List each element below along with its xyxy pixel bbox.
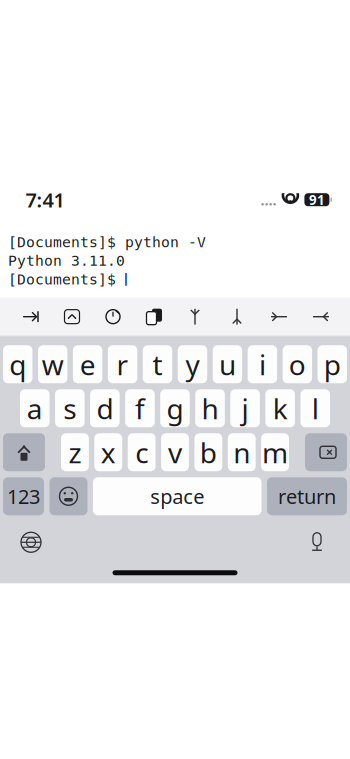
button[interactable]: b — [194, 433, 222, 471]
staticText: q — [9, 346, 26, 383]
staticText: a — [27, 390, 43, 427]
staticText: n — [233, 434, 250, 471]
button[interactable]: Down — [224, 304, 250, 330]
button[interactable]: Next keyboard — [14, 525, 48, 559]
button[interactable]: f — [125, 389, 155, 427]
staticText: p — [324, 346, 341, 383]
staticText: l — [312, 390, 319, 427]
button[interactable]: k — [265, 389, 295, 427]
button[interactable]: i — [248, 345, 277, 383]
button[interactable]: s — [55, 389, 85, 427]
staticText: 7:41 — [25, 186, 64, 213]
button[interactable]: g — [160, 389, 190, 427]
staticText: k — [273, 390, 288, 427]
staticText: b — [200, 434, 217, 471]
button[interactable]: Right — [308, 304, 334, 330]
staticText: u — [219, 346, 236, 383]
staticText: g — [166, 390, 183, 427]
staticText: t — [152, 346, 162, 383]
staticText: e — [80, 346, 96, 383]
button[interactable]: space — [93, 477, 261, 515]
staticText: o — [289, 346, 306, 383]
button[interactable]: m — [261, 433, 289, 471]
button[interactable]: Dictate — [300, 525, 334, 559]
staticText: d — [96, 390, 113, 427]
staticText: j — [242, 390, 249, 427]
button[interactable]: z — [61, 433, 89, 471]
button[interactable]: n — [228, 433, 256, 471]
button[interactable]: History — [100, 304, 126, 330]
staticText: 91 — [309, 191, 325, 209]
staticText: [Documents]$ python -V — [8, 234, 206, 250]
button[interactable]: y — [178, 345, 207, 383]
staticText: [Documents]$ — [8, 271, 125, 288]
staticText: .... — [260, 190, 276, 209]
button[interactable]: Left — [266, 304, 292, 330]
button[interactable]: u — [213, 345, 242, 383]
staticText: r — [117, 346, 129, 383]
staticText: w — [42, 346, 64, 383]
button[interactable]: c — [128, 433, 156, 471]
button[interactable]: p — [317, 345, 347, 383]
button[interactable]: o — [283, 345, 312, 383]
button[interactable]: Emoji — [49, 477, 87, 515]
staticText: i — [259, 346, 266, 383]
staticText: x — [101, 434, 116, 471]
staticText: f — [135, 390, 145, 427]
button[interactable]: Shift — [3, 433, 45, 471]
button[interactable]: d — [90, 389, 120, 427]
button[interactable]: Paste — [141, 304, 167, 330]
staticText: 123 — [7, 483, 40, 510]
staticText: s — [63, 390, 76, 427]
button[interactable]: e — [73, 345, 102, 383]
staticText: h — [202, 390, 219, 427]
button[interactable]: x — [94, 433, 122, 471]
button[interactable]: 123 — [3, 477, 44, 515]
button[interactable]: q — [3, 345, 32, 383]
button[interactable]: Control — [59, 304, 85, 330]
staticText: z — [68, 434, 81, 471]
button[interactable]: Delete — [305, 433, 347, 471]
button[interactable]: v — [161, 433, 189, 471]
button[interactable]: j — [230, 389, 260, 427]
button[interactable]: t — [143, 345, 172, 383]
staticText: m — [262, 434, 288, 471]
button[interactable]: return — [267, 477, 347, 515]
button[interactable]: a — [20, 389, 50, 427]
button[interactable]: r — [108, 345, 137, 383]
staticText: return — [278, 483, 336, 510]
button[interactable]: l — [300, 389, 330, 427]
button[interactable]: Tab — [18, 304, 44, 330]
staticText: v — [168, 434, 182, 471]
staticText: c — [135, 434, 148, 471]
button[interactable]: h — [195, 389, 225, 427]
button[interactable]: Up — [182, 304, 208, 330]
button[interactable]: w — [38, 345, 67, 383]
staticText: y — [185, 346, 199, 383]
staticText: space — [150, 483, 204, 510]
staticText: Python 3.11.0 — [8, 252, 125, 269]
